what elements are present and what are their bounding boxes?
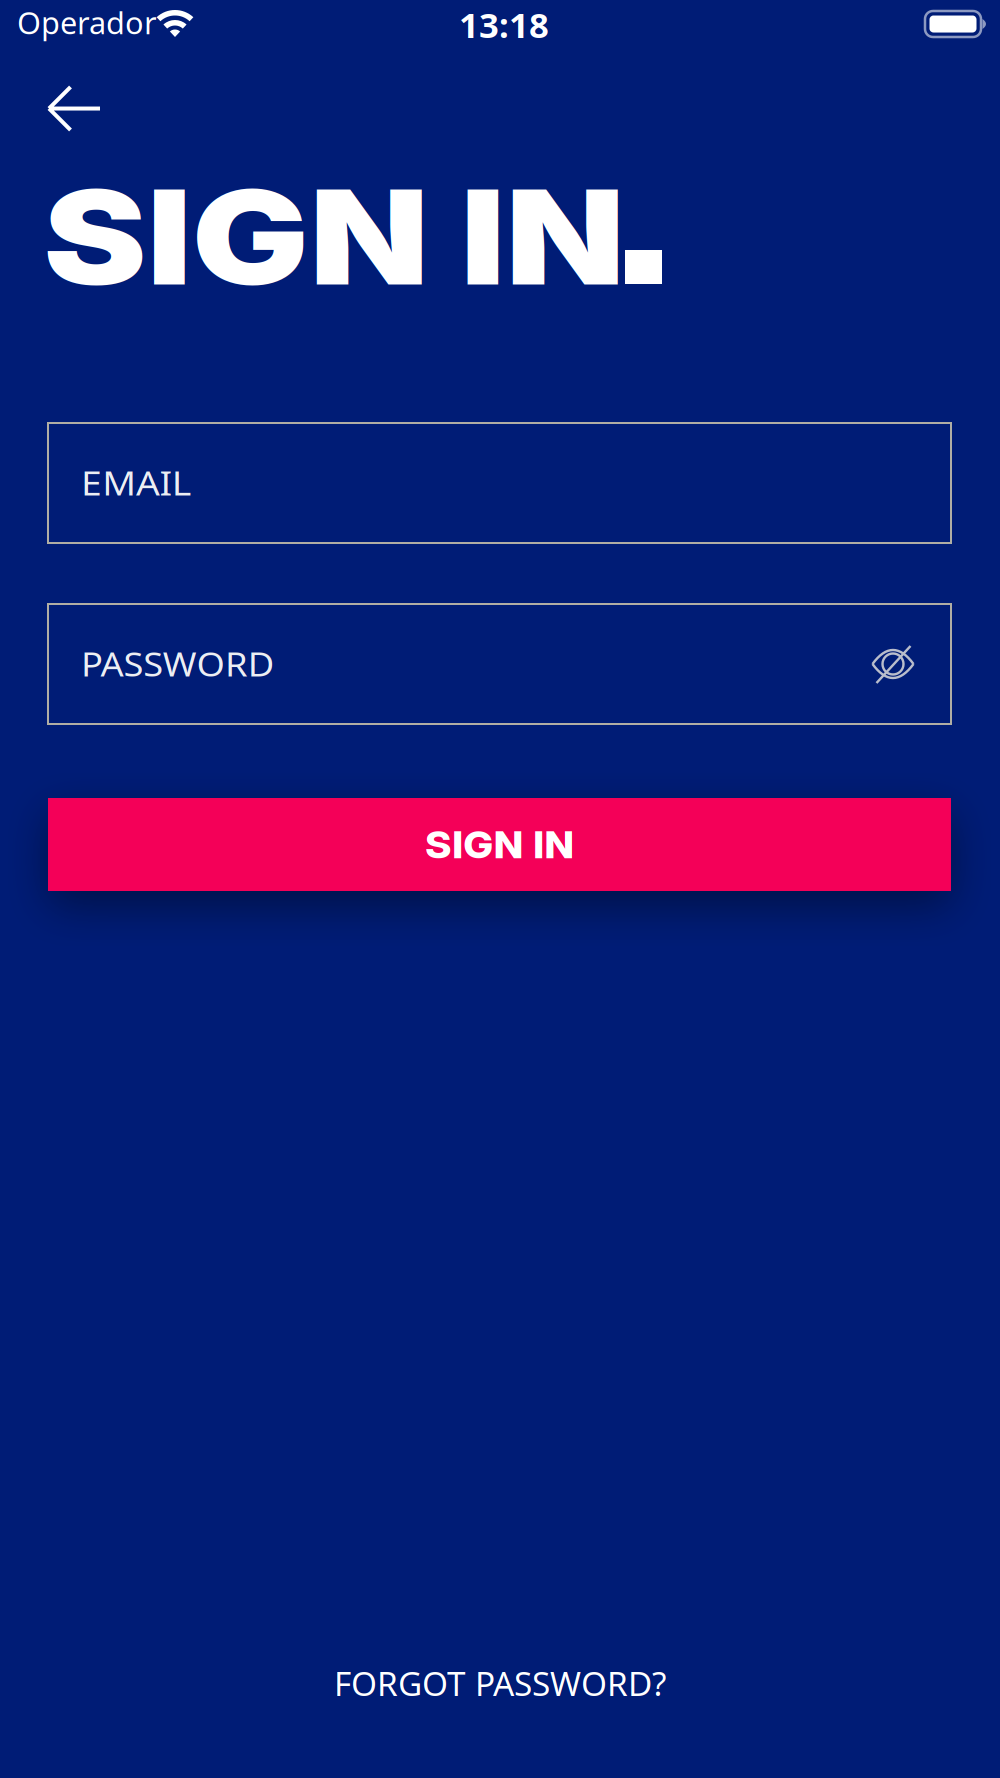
staticText: Operador [17, 2, 157, 43]
staticText: PASSWORD [81, 641, 258, 686]
staticText: SIGN IN [43, 158, 533, 316]
staticText: 13:18 [459, 1, 549, 47]
staticText: SIGN IN [429, 821, 570, 867]
staticText: FORGOT PASSWORD? [334, 1661, 666, 1705]
staticText: EMAIL [81, 460, 179, 505]
